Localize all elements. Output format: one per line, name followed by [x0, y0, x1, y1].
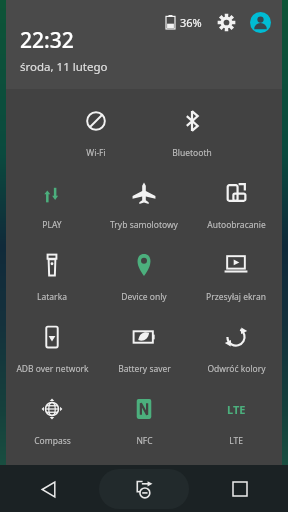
staticText: 36% [180, 15, 202, 30]
button[interactable]: Odwróć kolory [190, 311, 282, 383]
button[interactable]: Back [25, 466, 71, 512]
staticText: Battery saver [118, 363, 171, 375]
staticText: Tryb samolotowy [110, 219, 178, 231]
button[interactable]: Battery saver [98, 311, 190, 383]
staticText: NFC [136, 435, 153, 447]
staticText: 22:32 [20, 26, 74, 55]
staticText: ADB over network [16, 363, 89, 375]
button[interactable]: Wi-Fi [55, 95, 136, 167]
button[interactable]: Settings [214, 10, 238, 34]
button[interactable]: Bluetooth [151, 95, 232, 167]
button[interactable]: User [248, 10, 272, 34]
staticText: Compass [34, 435, 71, 447]
other: Battery [166, 15, 175, 29]
button[interactable]: Device only [98, 239, 190, 311]
staticText: Odwróć kolory [207, 363, 266, 375]
staticText: środa, 11 lutego [20, 59, 108, 75]
button[interactable]: PLAY [6, 167, 98, 239]
button[interactable]: Recents [217, 466, 263, 512]
button[interactable]: Autoobracanie [190, 167, 282, 239]
button[interactable]: Przesyłaj ekran [190, 239, 282, 311]
staticText: LTE [227, 402, 246, 417]
button[interactable]: Home [121, 466, 167, 512]
staticText: Latarka [37, 291, 67, 303]
button[interactable]: ADB over network [6, 311, 98, 383]
staticText: LTE [229, 435, 243, 447]
button[interactable]: Tryb samolotowy [98, 167, 190, 239]
button[interactable]: Latarka [6, 239, 98, 311]
button[interactable]: Compass [6, 383, 98, 455]
staticText: PLAY [42, 219, 62, 231]
staticText: Autoobracanie [207, 219, 266, 231]
staticText: Bluetooth [172, 147, 212, 159]
staticText: Wi-Fi [86, 147, 106, 159]
button[interactable]: LTE [190, 383, 282, 455]
staticText: Przesyłaj ekran [206, 291, 266, 303]
staticText: Device only [121, 291, 167, 303]
button[interactable]: NFC [98, 383, 190, 455]
